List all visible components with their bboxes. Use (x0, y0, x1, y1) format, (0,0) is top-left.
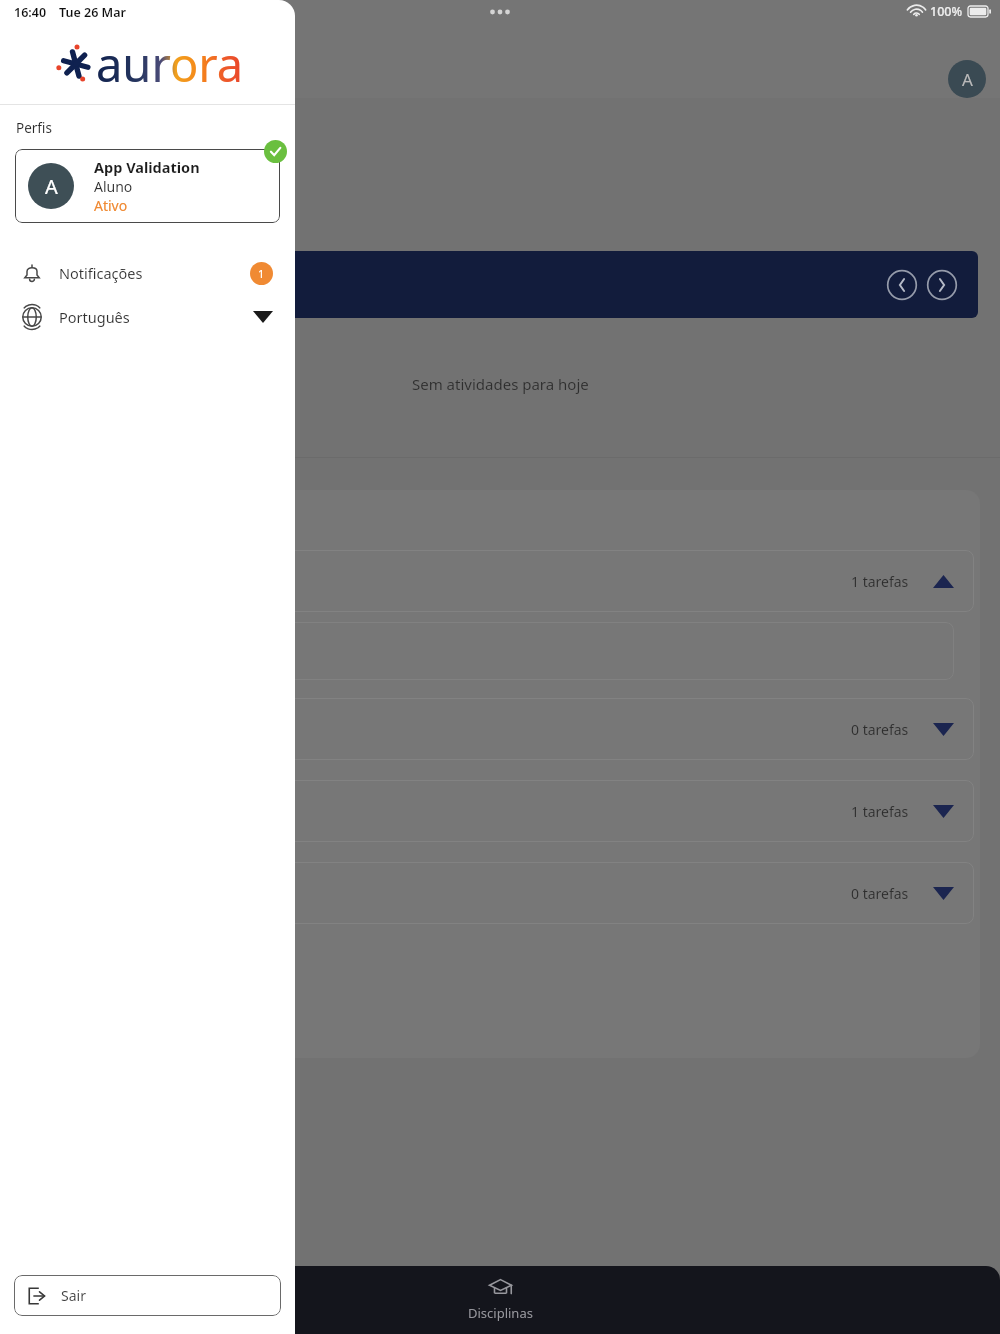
button[interactable]: Português (0, 297, 295, 337)
button[interactable]: Anterior (0, 251, 978, 318)
staticText: 0 tarefas (851, 884, 909, 903)
staticText: Sair (61, 1286, 86, 1305)
staticText: 16:40 (14, 4, 47, 21)
staticText: 1 tarefas (851, 572, 909, 591)
button[interactable]: Sair (14, 1275, 281, 1316)
button[interactable]: Anterior (886, 269, 918, 301)
button[interactable]: 1 tarefas (0, 550, 974, 612)
staticText: A (962, 68, 973, 91)
staticText: Sem atividades para hoje (412, 374, 589, 394)
staticText: Tue 26 Mar (59, 4, 126, 21)
button[interactable]: Perfil do usuário (948, 60, 986, 98)
staticText: Ativo (94, 196, 128, 215)
staticText: 1 tarefas (851, 802, 909, 821)
staticText: aurora (96, 32, 244, 96)
button[interactable]: 1 tarefas (0, 780, 974, 842)
staticText: 1 (258, 266, 265, 281)
button[interactable]: A (15, 149, 280, 223)
staticText: Português (59, 307, 130, 327)
staticText: A (45, 173, 58, 200)
staticText: 100% (930, 3, 963, 20)
button[interactable]: Próximo (926, 269, 958, 301)
staticText: App Validation (94, 157, 200, 177)
staticText: Perfis (16, 119, 52, 137)
staticText: Notificações (59, 263, 143, 283)
button[interactable]: 0 tarefas (0, 862, 974, 924)
staticText: Aluno (94, 177, 133, 196)
button[interactable]: 0 tarefas (0, 698, 974, 760)
staticText: Disciplinas (468, 1304, 533, 1322)
staticText: 0 tarefas (851, 720, 909, 739)
button[interactable]: Disciplinas (440, 1272, 561, 1328)
button[interactable]: Notificações (0, 253, 295, 293)
